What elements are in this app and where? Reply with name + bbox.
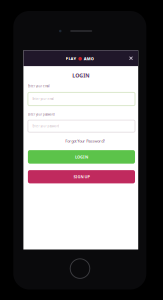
button[interactable]: LOGIN — [28, 150, 135, 164]
staticText: Enter your email — [32, 97, 54, 101]
button[interactable]: Close — [127, 54, 135, 62]
button[interactable]: SIGN UP — [28, 170, 135, 183]
staticText: Enter your password — [28, 113, 55, 116]
staticText: LOGIN — [72, 72, 89, 79]
staticText: LOGIN — [75, 154, 88, 159]
staticText: Forgot Your Password? — [65, 138, 105, 144]
staticText: Enter your password — [32, 124, 59, 128]
staticText: AMO — [84, 56, 94, 61]
staticText: PLAY — [66, 56, 77, 61]
button[interactable]: Forgot Your Password? — [65, 138, 105, 144]
staticText: Enter your email — [28, 84, 50, 88]
staticText: SIGN UP — [73, 174, 89, 179]
